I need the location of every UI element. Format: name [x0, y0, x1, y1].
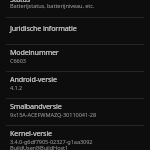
button[interactable]: Kernel-versie: [0, 126, 150, 150]
staticText: Kernel-versie: [10, 128, 52, 138]
staticText: 4.1.2: [10, 84, 23, 92]
staticText: Smalbandversie: [10, 101, 62, 111]
staticText: 3.4.0-g6df7905-02327-g1aa3092 BuildUser@…: [10, 138, 93, 150]
staticText: C6603: [10, 57, 26, 65]
staticText: Android-versie: [10, 74, 57, 84]
button[interactable]: Juridische informatie: [0, 18, 150, 43]
staticText: 9x15A-ACEFWMAZQ-30110041-28: [10, 111, 97, 119]
button[interactable]: Status: [0, 0, 150, 17]
button[interactable]: Android-versie: [0, 72, 150, 98]
button[interactable]: Smalbandversie: [0, 99, 150, 125]
staticText: Batterijstatus, batterijniveau, etc.: [10, 2, 95, 10]
staticText: Modelnummer: [10, 47, 59, 57]
staticText: Juridische informatie: [10, 23, 77, 33]
button[interactable]: Modelnummer: [0, 45, 150, 71]
staticText: Status: [10, 0, 31, 4]
